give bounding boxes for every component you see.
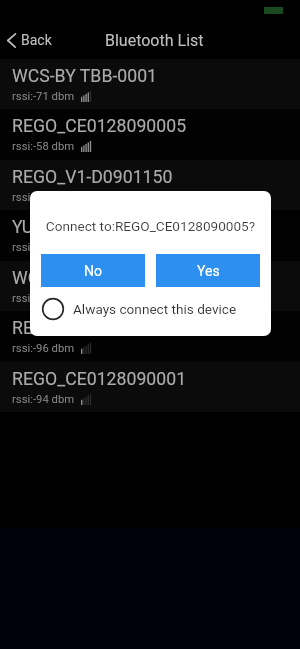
button[interactable]: WCS-BY TBB-0001 [0, 59, 300, 109]
button[interactable]: No [41, 254, 145, 287]
button[interactable]: REGO_CE0128090002 [0, 311, 300, 361]
button[interactable]: REGO_V1-D0901150 [0, 160, 300, 210]
button[interactable]: WCS-BY TBB-0003 [0, 261, 300, 311]
staticText: rssi:-62 dbm [12, 191, 75, 204]
staticText: Yes [197, 263, 220, 279]
staticText: rssi:-71 dbm [12, 90, 75, 103]
staticText: rssi:-80 dbm [12, 241, 75, 254]
staticText: WCS-BY TBB-0001 [12, 66, 158, 87]
button[interactable]: REGO_CE0128090001 [0, 362, 300, 412]
staticText: REGO_V1-D0901150 [12, 167, 173, 188]
staticText: rssi:-88 dbm [12, 292, 75, 305]
other: Back [7, 33, 16, 48]
staticText: No [84, 263, 102, 279]
staticText: rssi:-96 dbm [12, 342, 75, 355]
staticText: Always connect this device [73, 301, 237, 317]
staticText: REGO_CE0128090002 [12, 318, 187, 339]
button[interactable]: REGO_CE0128090005 [0, 109, 300, 159]
staticText: rssi:-94 dbm [12, 393, 75, 406]
button[interactable]: YU-BY TBB-0002 [0, 210, 300, 260]
staticText: YU-BY TBB-0002 [12, 217, 141, 238]
staticText: WCS-BY TBB-0003 [12, 268, 158, 289]
staticText: Connect to:REGO_CE0128090005? [30, 218, 271, 234]
staticText: REGO_CE0128090001 [12, 369, 187, 390]
button[interactable]: Yes [156, 254, 260, 287]
staticText: rssi:-58 dbm [12, 140, 75, 153]
button[interactable]: Back [0, 27, 62, 53]
staticText: REGO_CE0128090005 [12, 116, 187, 137]
staticText: Back [21, 32, 52, 48]
button[interactable]: Always connect this device [30, 294, 271, 324]
staticText: Bluetooth List [105, 31, 204, 50]
